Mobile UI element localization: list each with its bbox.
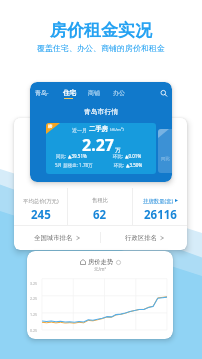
- button[interactable]: 住宅: [63, 89, 76, 97]
- staticText: 覆盖住宅、办公、商铺的房价和租金: [0, 43, 202, 53]
- staticText: 万: [115, 147, 121, 154]
- staticText: 1.25: [30, 312, 38, 317]
- staticText: 26116: [144, 207, 177, 223]
- staticText: 平均总价(万元): [23, 197, 59, 204]
- button[interactable]: 商铺: [88, 89, 100, 97]
- staticText: 全国城市排名: [34, 234, 73, 242]
- staticText: 同比: [161, 156, 170, 162]
- staticText: 二手房: [89, 125, 108, 133]
- staticText: 住宅: [63, 89, 76, 97]
- staticText: 3.25: [30, 281, 38, 286]
- staticText: 房价租金实况: [0, 20, 202, 41]
- button[interactable]: 挂牌数量(套): [133, 188, 187, 225]
- staticText: (元/m²): [110, 127, 124, 133]
- staticText: 62: [93, 207, 107, 223]
- staticText: 挂牌数量(套): [143, 197, 174, 204]
- staticText: 元/m²: [27, 266, 173, 272]
- button[interactable]: 售租比: [68, 188, 132, 225]
- button[interactable]: 平均总价(万元): [14, 188, 67, 225]
- button[interactable]: 行政区排名: [101, 226, 187, 249]
- staticText: 行政区排名: [125, 234, 157, 242]
- staticText: ▲39.51%: [68, 153, 87, 159]
- staticText: 0.25: [30, 328, 38, 333]
- staticText: ▲3.50%: [126, 162, 143, 168]
- staticText: 近一月: [72, 127, 87, 133]
- staticText: 2.27: [82, 134, 114, 156]
- button[interactable]: 青岛·: [35, 89, 49, 97]
- staticText: 环比:: [114, 162, 125, 168]
- staticText: 2.25: [30, 296, 38, 301]
- staticText: 5月 新楼盘: 1.78万: [55, 162, 93, 168]
- staticText: 售租比: [92, 197, 109, 204]
- button[interactable]: 办公: [113, 89, 125, 97]
- button[interactable]: 全国城市排名: [14, 226, 100, 249]
- staticText: 245: [31, 207, 51, 223]
- staticText: 同比:: [56, 153, 67, 159]
- staticText: ▲0.01%: [125, 153, 142, 159]
- staticText: 环比:: [113, 153, 124, 159]
- button[interactable]: 搜索: [157, 86, 171, 100]
- staticText: 青岛市行情: [30, 107, 172, 116]
- staticText: 房价走势: [88, 258, 114, 266]
- staticText: 榜: [48, 124, 53, 129]
